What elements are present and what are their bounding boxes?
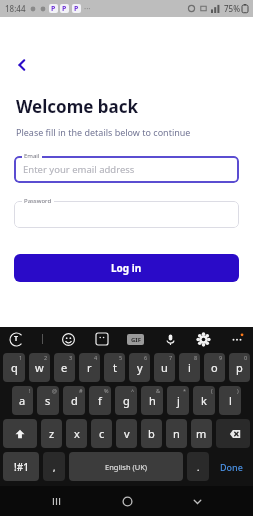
button[interactable]: Translate [8,331,24,347]
staticText: n [173,426,180,441]
button[interactable]: j [167,386,189,415]
staticText: English (UK) [105,462,148,472]
button[interactable]: v [116,419,137,448]
staticText: 8 [194,354,198,361]
button[interactable]: b [141,419,162,448]
button[interactable]: Shift [3,419,37,448]
staticText: ( [211,387,213,394]
staticText: 18:44 [5,3,26,14]
button[interactable]: c [91,419,112,448]
staticText: 2 [44,354,48,361]
button[interactable]: u [154,353,175,382]
button[interactable]: a [12,386,33,415]
staticText: Done [220,461,243,473]
staticText: u [161,360,168,375]
staticText: ! [29,387,31,394]
staticText: 3 [69,354,73,361]
button[interactable]: d [63,386,85,415]
button[interactable]: q [3,353,25,382]
staticText: Log in [111,261,142,275]
staticText: r [87,360,92,375]
button[interactable]: z [41,419,62,448]
button[interactable]: h [141,386,163,415]
staticText: 1 [19,354,23,361]
button[interactable]: e [54,353,75,382]
button[interactable]: Done [213,452,250,481]
staticText: . [197,461,200,473]
button[interactable]: p [229,353,250,382]
staticText: h [149,393,156,408]
staticText: GIF [131,336,141,344]
staticText: e [61,360,68,375]
staticText: P [74,4,79,13]
button[interactable]: f [89,386,111,415]
button[interactable]: Log in [14,254,239,282]
button[interactable] [14,201,239,228]
staticText: i [188,360,191,375]
staticText: s [45,393,51,408]
button[interactable]: , [43,452,65,481]
staticText: w [35,360,44,375]
button[interactable]: Back [8,51,36,79]
button[interactable]: Voice input [162,331,178,347]
button[interactable]: Backspace [216,419,250,448]
staticText: z [49,426,55,441]
button[interactable]: Emoji [60,331,76,347]
button[interactable]: !#1 [3,452,39,481]
button[interactable]: English (UK) [69,452,183,481]
staticText: 7 [169,354,173,361]
staticText: T [14,334,19,344]
staticText: o [211,360,218,375]
button[interactable]: Recent apps [41,486,71,516]
staticText: 75% [224,3,240,14]
staticText: j [177,393,180,408]
button[interactable]: x [66,419,87,448]
staticText: 6 [144,354,148,361]
button[interactable]: Stickers [94,331,110,347]
button[interactable]: n [166,419,187,448]
staticText: % [104,387,109,394]
staticText: c [99,426,105,441]
button[interactable]: r [79,353,100,382]
button[interactable]: More options [229,331,245,347]
staticText: t [113,360,117,375]
staticText: Please fill in the details below to cont… [16,126,191,138]
staticText: b [148,426,155,441]
button[interactable]: Enter your email address [14,156,239,183]
staticText: @ [52,387,57,394]
staticText: !#1 [14,460,29,474]
staticText: l [229,393,232,408]
staticText: m [196,426,207,441]
button[interactable]: w [29,353,50,382]
staticText: 4 [94,354,98,361]
staticText: Email [24,152,40,160]
button[interactable]: y [129,353,150,382]
staticText: 5 [119,354,123,361]
staticText: P [62,4,67,13]
button[interactable]: t [104,353,125,382]
button[interactable]: Settings [195,331,211,347]
button[interactable]: GIF [127,334,144,345]
staticText: y [137,360,143,375]
staticText: f [98,393,102,408]
staticText: 0 [244,354,248,361]
button[interactable]: i [179,353,200,382]
staticText: Welcome back [16,95,139,118]
button[interactable]: m [191,419,212,448]
staticText: v [124,426,130,441]
button[interactable]: . [187,452,209,481]
button[interactable]: Hide keyboard [182,486,212,516]
staticText: ^ [131,387,135,394]
staticText: * [183,387,187,394]
staticText: a [19,393,26,408]
button[interactable]: k [193,386,215,415]
staticText: P [51,4,56,13]
button[interactable]: Home [112,486,142,516]
staticText: 9 [219,354,223,361]
button[interactable]: o [204,353,225,382]
button[interactable]: g [115,386,137,415]
button[interactable]: l [219,386,241,415]
button[interactable]: s [37,386,59,415]
staticText: ) [237,387,239,394]
staticText: p [236,360,243,375]
